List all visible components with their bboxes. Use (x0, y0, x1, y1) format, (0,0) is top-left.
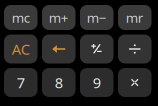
button[interactable]: 8 (42, 68, 75, 97)
staticText: mc (12, 9, 30, 26)
staticText: mr (126, 9, 144, 26)
staticText: 8 (55, 73, 63, 92)
button[interactable]: memory subtract (80, 5, 113, 30)
button[interactable]: 9 (80, 68, 113, 97)
button[interactable]: multiply (118, 68, 151, 97)
staticText: m+ (49, 9, 69, 26)
staticText: 9 (93, 73, 101, 92)
button[interactable]: memory add (42, 5, 75, 30)
button[interactable]: all clear (4, 34, 37, 63)
button[interactable]: memory clear (4, 5, 37, 30)
button[interactable]: divide (118, 34, 151, 63)
button[interactable]: memory recall (118, 5, 151, 30)
button[interactable]: delete (42, 34, 75, 63)
button[interactable]: plus minus (80, 34, 113, 63)
staticText: m− (87, 9, 107, 26)
staticText: 7 (17, 73, 25, 92)
staticText: AC (12, 39, 30, 59)
button[interactable]: 7 (4, 68, 37, 97)
